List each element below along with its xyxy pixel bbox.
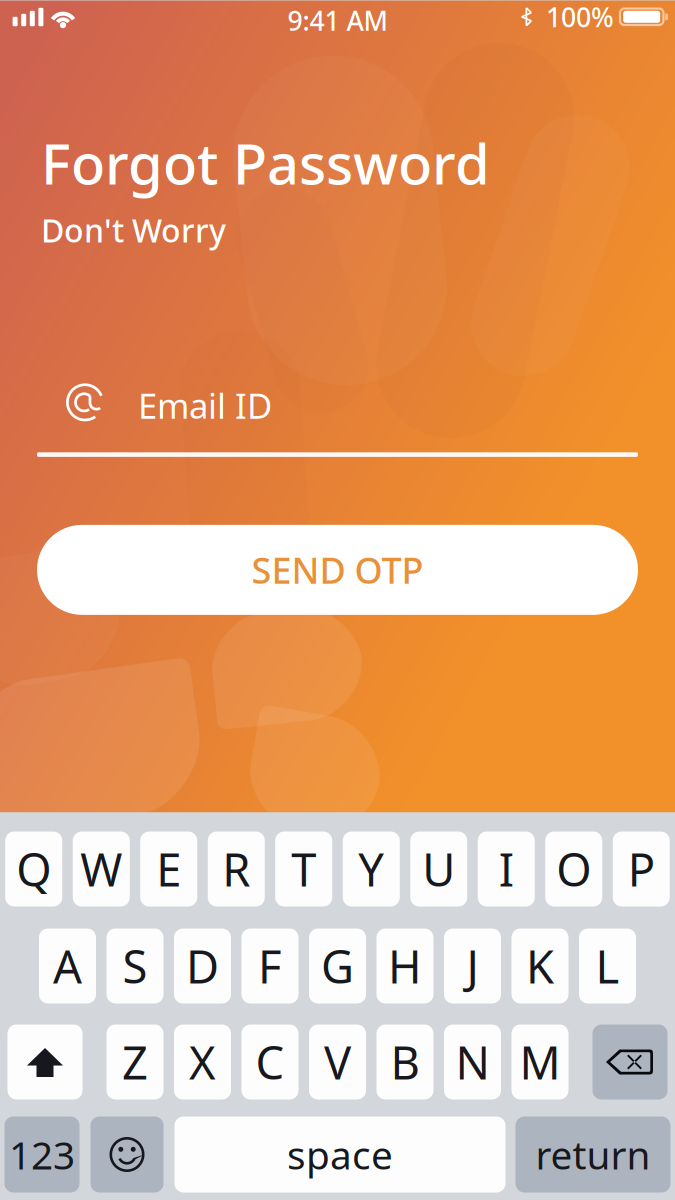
staticText: Don't Worry (41, 209, 226, 251)
button[interactable]: V (309, 1024, 366, 1099)
staticText: P (628, 839, 655, 899)
staticText: A (53, 936, 82, 996)
staticText: I (499, 839, 514, 899)
staticText: N (455, 1032, 489, 1092)
staticText: Y (358, 839, 384, 899)
button[interactable]: 123 (4, 1116, 79, 1192)
staticText: R (222, 839, 250, 899)
staticText: M (519, 1032, 560, 1092)
button[interactable]: S (106, 928, 163, 1003)
staticText: X (189, 1032, 216, 1092)
staticText: Email ID (138, 382, 272, 428)
button[interactable]: SEND OTP (0, 525, 675, 615)
button[interactable]: Delete (592, 1024, 667, 1099)
staticText: W (80, 839, 122, 899)
button[interactable]: Shift (7, 1024, 82, 1099)
button[interactable]: X (174, 1024, 231, 1099)
staticText: J (466, 936, 478, 996)
button[interactable]: N (444, 1024, 501, 1099)
button[interactable]: M (511, 1024, 568, 1099)
staticText: F (258, 936, 282, 996)
button[interactable]: F (241, 928, 298, 1003)
button[interactable]: W (73, 831, 130, 906)
button[interactable]: Q (5, 831, 62, 906)
button[interactable]: R (208, 831, 265, 906)
button[interactable]: H (376, 928, 433, 1003)
staticText: D (186, 936, 219, 996)
button[interactable]: P (613, 831, 670, 906)
staticText: L (595, 936, 619, 996)
staticText: Q (16, 839, 51, 899)
button[interactable]: Y (343, 831, 400, 906)
staticText: H (388, 936, 422, 996)
button[interactable]: K (511, 928, 568, 1003)
button[interactable]: T (275, 831, 332, 906)
button[interactable]: E (140, 831, 197, 906)
button[interactable]: Z (106, 1024, 163, 1099)
staticText: V (324, 1032, 351, 1092)
staticText: G (321, 936, 354, 996)
button[interactable]: I (478, 831, 535, 906)
button[interactable]: U (410, 831, 467, 906)
staticText: B (390, 1032, 419, 1092)
button[interactable]: J (444, 928, 501, 1003)
button[interactable]: A (39, 928, 96, 1003)
staticText: O (556, 839, 591, 899)
staticText: 100% (546, 0, 614, 34)
staticText: C (255, 1032, 284, 1092)
button[interactable]: L (579, 928, 636, 1003)
button[interactable]: O (545, 831, 602, 906)
button[interactable]: B (376, 1024, 433, 1099)
staticText: Forgot Password (41, 125, 490, 200)
staticText: E (156, 839, 181, 899)
staticText: T (291, 839, 316, 899)
staticText: space (287, 1129, 393, 1180)
staticText: 9:41 AM (287, 3, 387, 38)
staticText: U (422, 839, 455, 899)
staticText: SEND OTP (251, 546, 423, 594)
button[interactable]: Emoji (90, 1116, 163, 1192)
button[interactable]: D (174, 928, 231, 1003)
button[interactable]: space (174, 1116, 505, 1192)
staticText: S (122, 936, 147, 996)
staticText: return (535, 1129, 650, 1180)
staticText: Z (122, 1032, 148, 1092)
button[interactable]: G (309, 928, 366, 1003)
button[interactable]: return (515, 1116, 670, 1192)
button[interactable]: C (241, 1024, 298, 1099)
staticText: K (526, 936, 554, 996)
staticText: 123 (9, 1129, 75, 1180)
